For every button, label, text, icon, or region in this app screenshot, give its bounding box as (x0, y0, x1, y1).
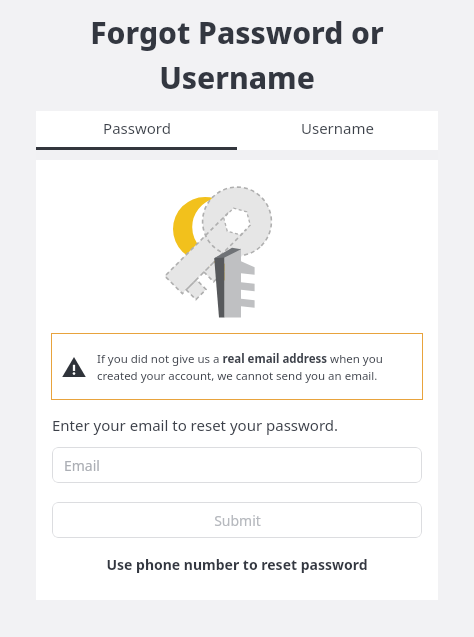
staticText: Email (64, 456, 100, 475)
button[interactable]: Use phone number to reset password (36, 550, 438, 578)
staticText: Password (103, 118, 171, 138)
button[interactable]: Password (36, 111, 237, 150)
staticText: If you did not give us a real email addr… (97, 351, 413, 383)
other: Warning (62, 356, 86, 378)
staticText: Use phone number to reset password (106, 555, 368, 574)
button[interactable]: Submit (52, 502, 422, 538)
staticText: Username (0, 57, 474, 98)
staticText: Forgot Password or (0, 12, 474, 53)
button[interactable]: Email (52, 447, 422, 483)
staticText: Username (301, 118, 374, 138)
button[interactable]: Username (237, 111, 438, 150)
staticText: Enter your email to reset your password. (52, 415, 339, 435)
staticText: Submit (214, 511, 261, 530)
